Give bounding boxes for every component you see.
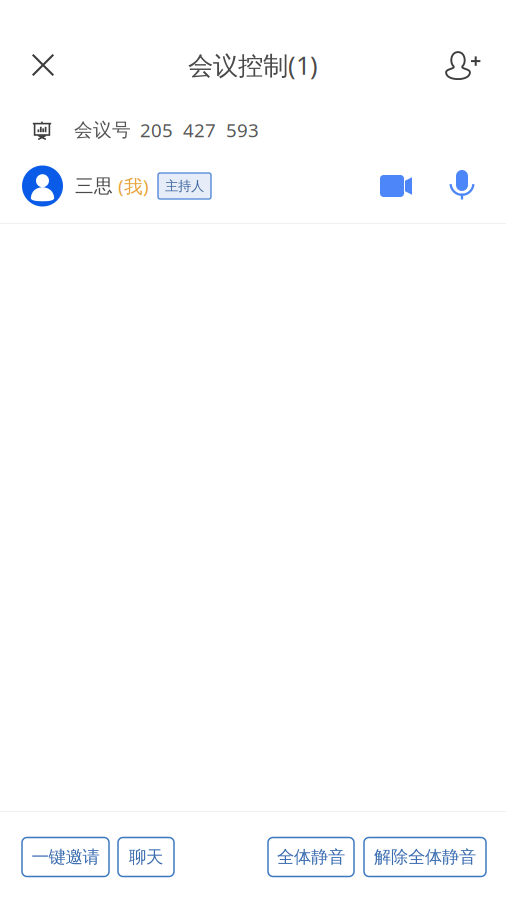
button[interactable]: 一键邀请 — [22, 837, 109, 876]
staticText: (我) — [118, 174, 149, 198]
staticText: 聊天 — [129, 846, 163, 868]
button[interactable]: 麦克风 — [440, 163, 484, 209]
button[interactable]: 解除全体静音 — [364, 837, 486, 876]
staticText: 205 427 593 — [140, 118, 259, 142]
button[interactable]: 关闭 — [12, 36, 74, 94]
staticText: 全体静音 — [277, 846, 345, 868]
button[interactable]: 摄像头 — [374, 163, 418, 209]
staticText: 会议控制(1) — [188, 48, 318, 82]
button[interactable]: 添加成员 — [433, 36, 495, 94]
staticText: 会议号 — [74, 118, 131, 141]
button[interactable]: 全体静音 — [268, 837, 354, 876]
staticText: 解除全体静音 — [374, 846, 476, 868]
button[interactable]: 聊天 — [118, 837, 174, 876]
staticText: 主持人 — [165, 178, 204, 194]
staticText: 一键邀请 — [31, 846, 99, 868]
staticText: 三思 — [75, 174, 113, 197]
